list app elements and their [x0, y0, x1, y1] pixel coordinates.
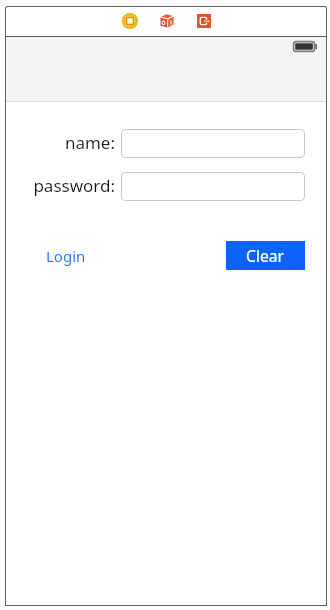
staticText: Login	[46, 246, 86, 266]
button[interactable]: Exit	[192, 9, 216, 33]
button[interactable]: password field	[121, 172, 305, 201]
staticText: name:	[64, 131, 115, 154]
staticText: Clear	[246, 245, 285, 266]
staticText: password:	[33, 174, 115, 197]
button[interactable]: Clear	[226, 241, 305, 270]
button[interactable]: Package	[155, 9, 179, 33]
button[interactable]: Stop	[118, 9, 142, 33]
other: Battery	[293, 41, 317, 52]
button[interactable]: name field	[121, 129, 305, 158]
button[interactable]: Login	[46, 241, 86, 270]
